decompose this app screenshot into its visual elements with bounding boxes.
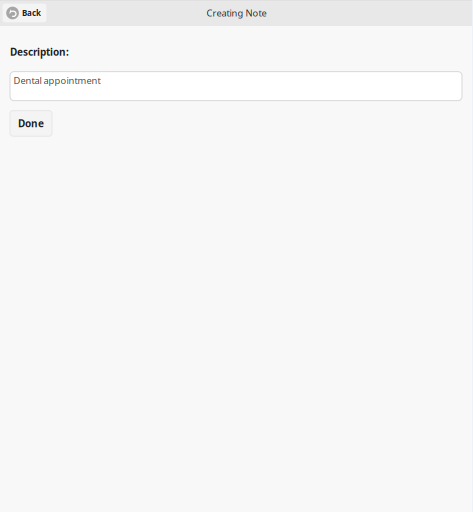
staticText: Creating Note (206, 7, 266, 19)
button[interactable]: Dental appointment (10, 72, 462, 101)
staticText: Dental appointment (13, 74, 100, 87)
staticText: Back (22, 8, 41, 18)
button[interactable]: Back (3, 4, 46, 22)
button[interactable]: Done (10, 111, 52, 136)
staticText: Done (18, 117, 44, 130)
staticText: Description: (10, 45, 69, 59)
